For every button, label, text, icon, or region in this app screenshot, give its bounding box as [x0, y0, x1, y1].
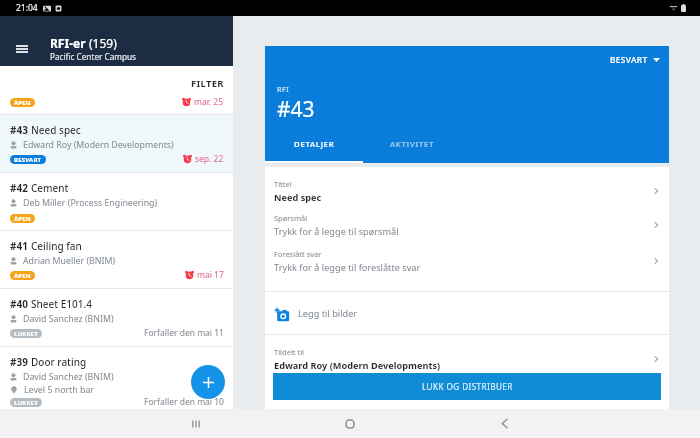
button[interactable]: Back [427, 409, 581, 438]
button[interactable]: #40 [0, 289, 233, 346]
staticText: #39 [10, 355, 28, 369]
staticText: #40 [10, 297, 28, 311]
button[interactable]: FILTER [182, 77, 233, 90]
staticText: Need spec [31, 123, 81, 137]
button[interactable]: Add RFI [191, 365, 225, 399]
staticText: Foreslått svar [274, 249, 322, 259]
staticText: Edward Roy (Modern Developments) [23, 139, 174, 151]
staticText: BESVART [14, 156, 42, 164]
button[interactable]: Home [273, 409, 427, 438]
staticText: (159) [89, 35, 117, 51]
staticText: Forfaller den mai 11 [144, 327, 224, 339]
staticText: Pacific Center Campus [50, 51, 136, 62]
staticText: BESVART [610, 54, 648, 65]
staticText: Adrian Mueller (BNIM) [23, 255, 116, 267]
staticText: David Sanchez (BNIM) [23, 313, 114, 325]
button[interactable]: Tildelt til [265, 335, 669, 373]
staticText: #43 [277, 95, 315, 124]
button[interactable]: #39 [0, 347, 233, 409]
staticText: ÅPEN [14, 272, 31, 280]
staticText: #43 [10, 123, 28, 137]
staticText: Level 5 north bar [24, 384, 94, 396]
staticText: Door rating [31, 355, 87, 369]
staticText: RFI-er [50, 35, 86, 51]
staticText: FILTER [191, 77, 224, 90]
staticText: ÅPEN [14, 99, 31, 107]
staticText: Need spec [274, 191, 322, 203]
staticText: Edward Roy (Modern Developments) [274, 359, 441, 372]
staticText: Sheet E101.4 [31, 297, 92, 311]
staticText: AKTIVITET [390, 139, 435, 150]
button[interactable]: BESVART [601, 46, 669, 73]
staticText: LUKKET [14, 330, 38, 338]
staticText: #42 [10, 181, 28, 195]
staticText: Tittel [274, 179, 292, 189]
staticText: mar. 25 [194, 96, 224, 108]
staticText: #41 [10, 239, 28, 253]
staticText: Legg til bilder [298, 307, 358, 320]
staticText: 21:04 [16, 2, 38, 14]
button[interactable]: Tittel [265, 179, 669, 203]
button[interactable]: #43 [0, 115, 233, 172]
staticText: LUKKET [14, 399, 38, 407]
staticText: mai 17 [197, 269, 224, 281]
staticText: RFI [277, 84, 290, 94]
button[interactable]: Foreslått svar [265, 249, 669, 273]
staticText: DETALJER [294, 139, 335, 150]
button[interactable]: Spørsmål [265, 213, 669, 237]
staticText: Cement [31, 181, 69, 195]
staticText: Ceiling fan [31, 239, 82, 253]
button[interactable]: DETALJER [265, 133, 363, 161]
staticText: Trykk for å legge til foreslåtte svar [274, 261, 421, 273]
button[interactable]: ÅPEN [0, 90, 233, 114]
staticText: Spørsmål [274, 213, 308, 223]
staticText: Trykk for å legge til spørsmål [274, 225, 399, 237]
button[interactable]: LUKK OG DISTRIBUER [273, 373, 661, 400]
button[interactable]: Recent apps [119, 409, 273, 438]
button[interactable]: #41 [0, 231, 233, 288]
staticText: David Sanchez (BNIM) [23, 371, 114, 383]
button[interactable]: Legg til bilder [265, 292, 669, 334]
button[interactable]: #42 [0, 173, 233, 230]
button[interactable]: Menu [0, 35, 44, 62]
staticText: sep. 22 [195, 153, 224, 165]
staticText: Tildelt til [274, 347, 305, 357]
staticText: ÅPEN [14, 215, 31, 223]
staticText: Deb Miller (Process Engineering) [23, 197, 158, 209]
button[interactable]: AKTIVITET [363, 133, 461, 161]
staticText: LUKK OG DISTRIBUER [422, 381, 513, 392]
staticText: Forfaller den mai 10 [144, 396, 224, 408]
